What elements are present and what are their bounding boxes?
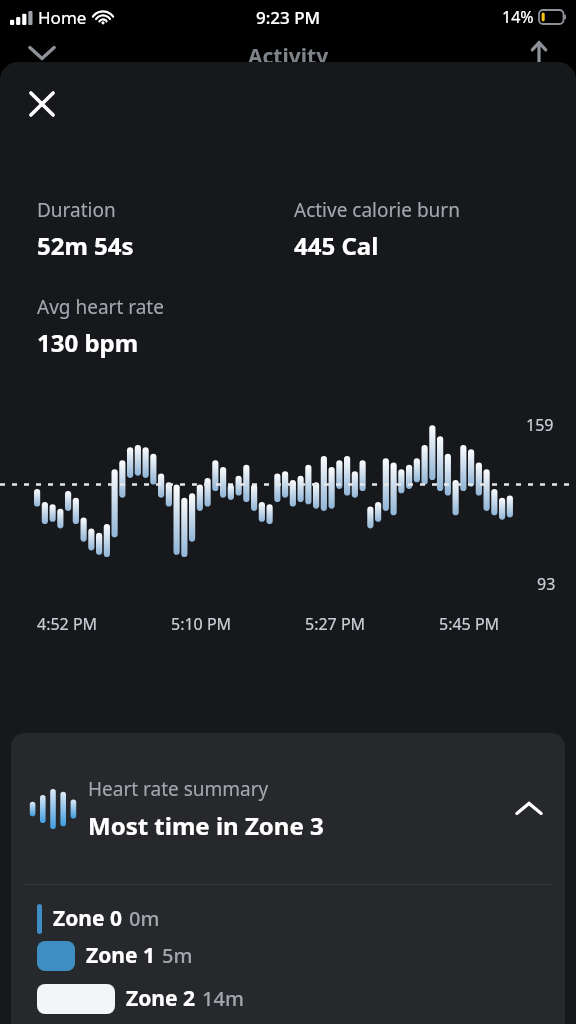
- staticText: 445 Cal: [294, 229, 379, 262]
- other: Share: [526, 40, 552, 66]
- staticText: 5:10 PM: [171, 613, 232, 635]
- staticText: 93: [537, 573, 556, 595]
- staticText: 0m: [129, 905, 160, 932]
- staticText: 9:23 PM: [256, 6, 321, 29]
- staticText: Active calorie burn: [294, 197, 460, 223]
- button[interactable]: Close: [18, 80, 66, 128]
- staticText: Most time in Zone 3: [88, 809, 324, 842]
- staticText: Zone 0: [53, 904, 122, 933]
- staticText: Heart rate summary: [88, 776, 269, 802]
- staticText: 159: [526, 414, 554, 436]
- staticText: 5:45 PM: [439, 613, 500, 635]
- staticText: 52m 54s: [37, 229, 134, 262]
- other: Collapse: [26, 44, 58, 64]
- staticText: Avg heart rate: [37, 294, 164, 320]
- staticText: 5m: [162, 942, 193, 969]
- staticText: Zone 1: [86, 941, 155, 970]
- staticText: Activity: [248, 42, 329, 71]
- button[interactable]: Heart rate summary: [11, 733, 565, 884]
- staticText: 130 bpm: [37, 326, 139, 359]
- staticText: Duration: [37, 197, 116, 223]
- staticText: Home: [38, 6, 87, 29]
- button[interactable]: Zone 1: [11, 934, 565, 977]
- button[interactable]: Zone 0: [11, 885, 565, 934]
- staticText: 5:27 PM: [305, 613, 366, 635]
- staticText: 4:52 PM: [37, 613, 98, 635]
- other: Collapse summary: [513, 799, 545, 819]
- button[interactable]: Zone 2: [11, 977, 565, 1020]
- staticText: 14%: [502, 6, 534, 28]
- staticText: Zone 2: [126, 984, 195, 1013]
- staticText: 14m: [202, 985, 244, 1012]
